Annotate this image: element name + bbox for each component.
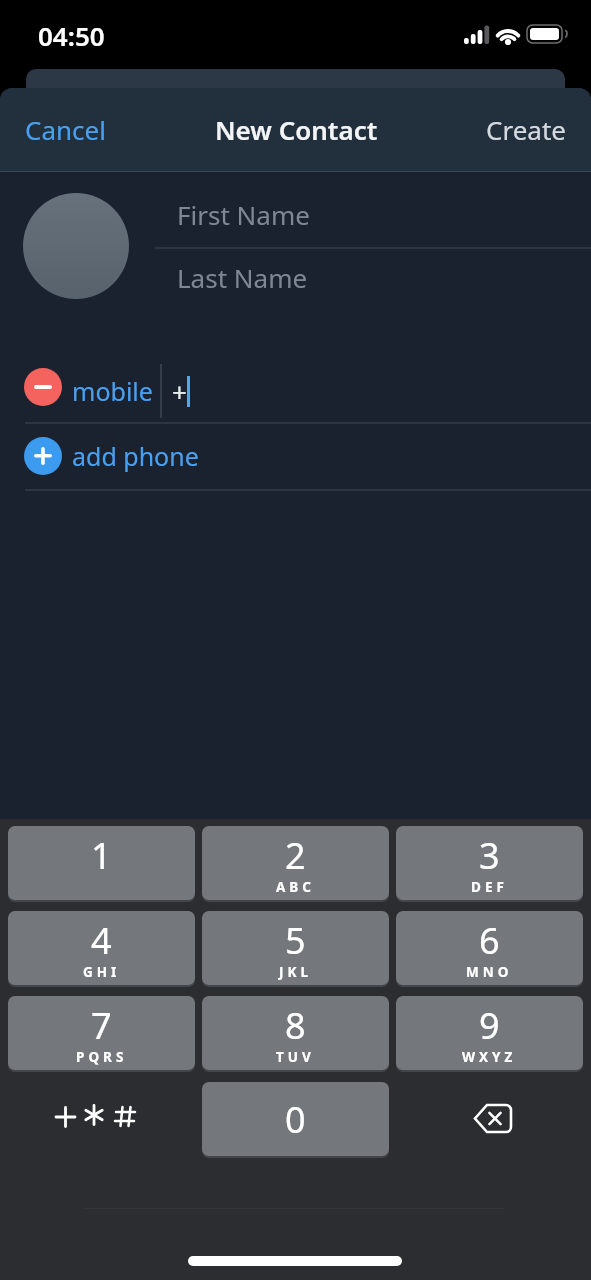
staticText: 3 [479, 831, 500, 880]
button[interactable]: 5 [202, 911, 389, 985]
staticText: GHI [83, 963, 121, 981]
staticText: 0 [285, 1095, 306, 1144]
staticText: Cancel [25, 112, 106, 147]
staticText: 2 [285, 831, 306, 880]
staticText: 1 [91, 831, 112, 880]
button[interactable] [455, 1092, 545, 1146]
staticText: 7 [91, 1001, 112, 1050]
staticText: New Contact [215, 112, 378, 147]
button[interactable]: Cancel [25, 104, 591, 154]
button[interactable]: 0 [202, 1082, 389, 1156]
button[interactable] [24, 436, 566, 488]
button[interactable] [23, 193, 129, 299]
staticText: 9 [479, 1001, 500, 1050]
button[interactable] [40, 1092, 150, 1146]
button[interactable]: First Name [155, 182, 591, 247]
button[interactable]: Create [460, 104, 566, 154]
staticText: 04:50 [38, 18, 105, 50]
staticText: 4 [91, 916, 112, 965]
staticText: WXYZ [462, 1048, 517, 1066]
button[interactable]: 7 [8, 996, 195, 1070]
button[interactable] [24, 368, 62, 406]
button[interactable]: 6 [396, 911, 583, 985]
staticText: + [172, 374, 187, 409]
staticText: JKL [279, 963, 312, 981]
button[interactable]: 1 [8, 826, 195, 900]
staticText: 5 [285, 916, 306, 965]
staticText: Create [486, 112, 566, 147]
staticText: TUV [276, 1048, 315, 1066]
button[interactable]: 9 [396, 996, 583, 1070]
button[interactable]: Last Name [155, 246, 591, 308]
button[interactable]: 2 [202, 826, 389, 900]
button[interactable]: mobile [72, 366, 192, 416]
staticText: mobile [72, 374, 153, 408]
staticText: First Name [177, 197, 310, 232]
staticText: ABC [276, 878, 315, 896]
staticText: MNO [466, 963, 513, 981]
button[interactable]: 4 [8, 911, 195, 985]
staticText: add phone [72, 439, 199, 473]
button[interactable]: 8 [202, 996, 389, 1070]
staticText: 8 [285, 1001, 306, 1050]
button[interactable]: 3 [396, 826, 583, 900]
staticText: PQRS [76, 1048, 128, 1066]
staticText: 6 [479, 916, 500, 965]
staticText: Last Name [177, 260, 308, 295]
staticText: DEF [471, 878, 508, 896]
